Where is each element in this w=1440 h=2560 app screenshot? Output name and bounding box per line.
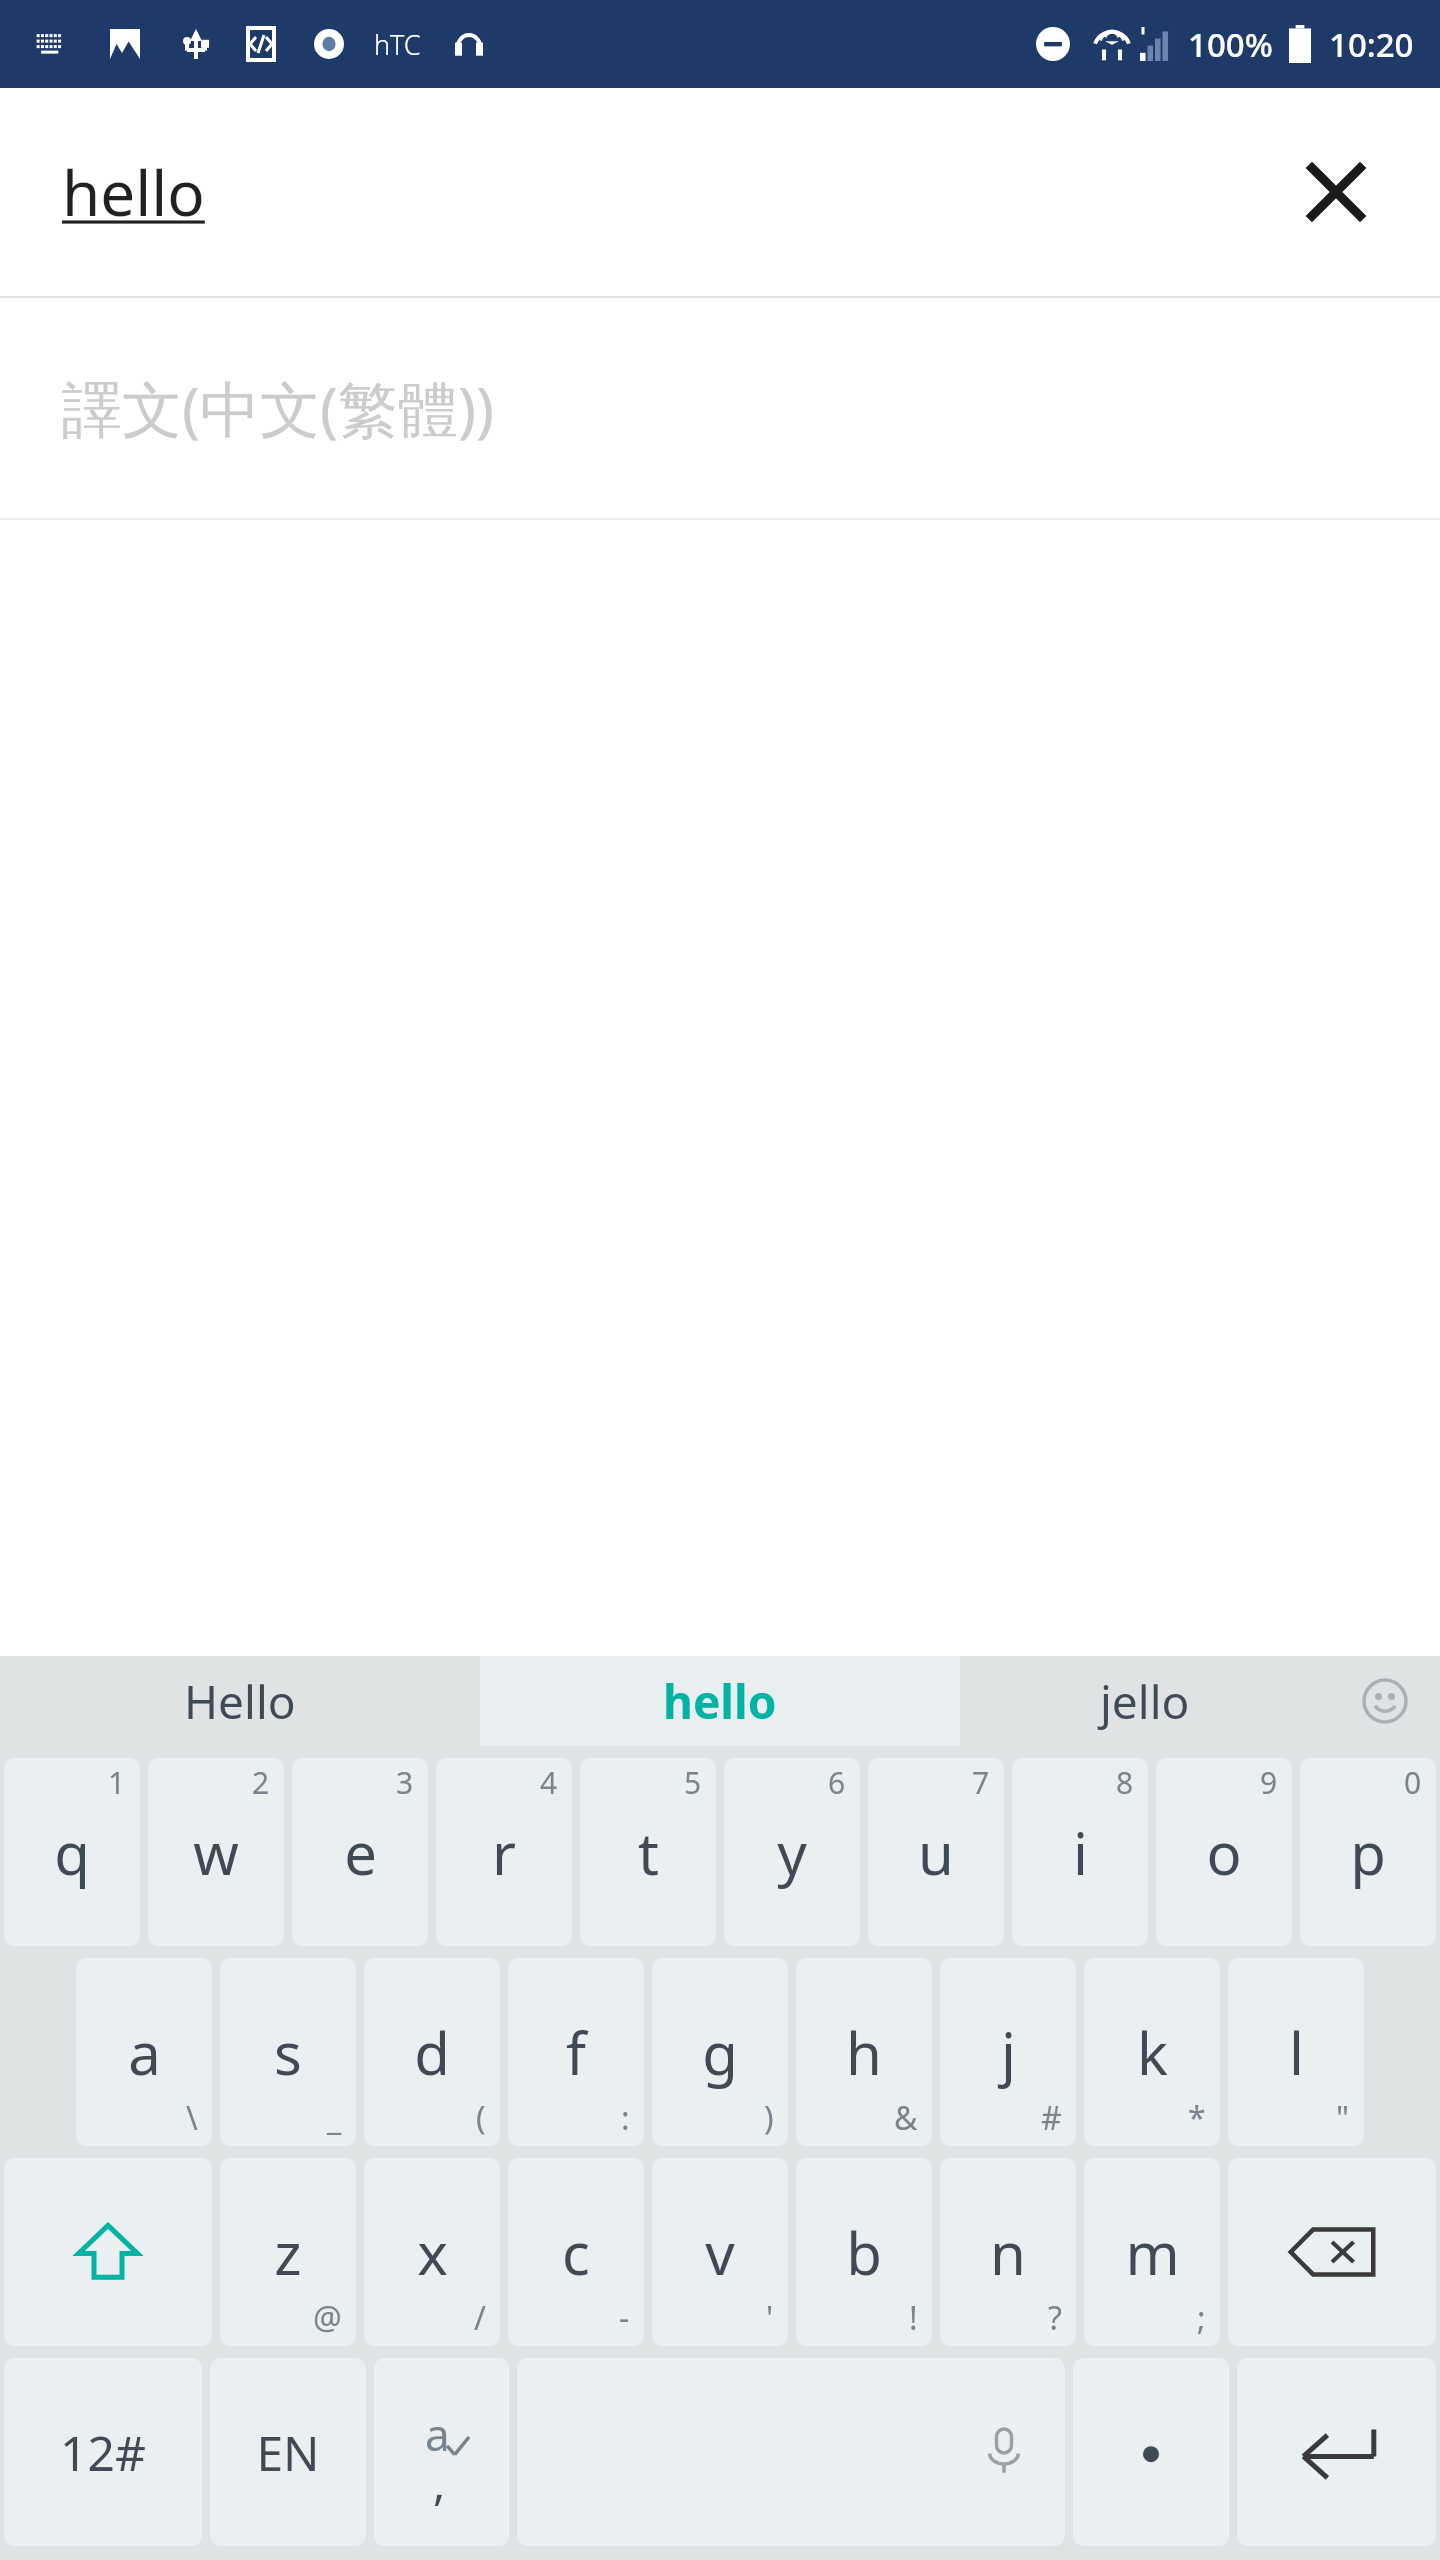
staticText: (: [476, 2096, 486, 2140]
staticText: t: [638, 1813, 659, 1892]
button[interactable]: jello: [960, 1656, 1330, 1746]
staticText: e: [344, 1813, 377, 1892]
staticText: ,: [433, 2451, 446, 2514]
staticText: i: [1073, 1813, 1088, 1892]
staticText: w: [193, 1813, 239, 1892]
staticText: v: [705, 2213, 735, 2292]
staticText: 8: [1116, 1762, 1134, 1803]
button[interactable]: k: [1084, 1958, 1220, 2146]
staticText: a: [425, 2404, 450, 2464]
staticText: hello: [663, 1670, 777, 1733]
staticText: hello: [62, 150, 205, 234]
button[interactable]: t: [580, 1758, 716, 1946]
staticText: g: [702, 2013, 738, 2092]
staticText: &: [894, 2096, 918, 2140]
button[interactable]: Backspace: [1228, 2158, 1436, 2346]
button[interactable]: f: [508, 1958, 644, 2146]
button[interactable]: hello: [480, 1656, 960, 1746]
button[interactable]: s: [220, 1958, 356, 2146]
button[interactable]: c: [508, 2158, 644, 2346]
staticText: Hello: [184, 1670, 296, 1733]
staticText: #: [1041, 2096, 1062, 2140]
staticText: 0: [1404, 1762, 1422, 1803]
staticText: 3: [396, 1762, 414, 1803]
staticText: x: [417, 2213, 448, 2292]
button[interactable]: g: [652, 1958, 788, 2146]
button[interactable]: m: [1084, 2158, 1220, 2346]
button[interactable]: z: [220, 2158, 356, 2346]
staticText: 5: [684, 1762, 702, 1803]
button[interactable]: Space: [517, 2358, 1065, 2546]
staticText: !: [909, 2296, 918, 2340]
staticText: k: [1137, 2013, 1168, 2092]
button[interactable]: 12#: [4, 2358, 202, 2546]
staticText: a: [128, 2013, 161, 2092]
button[interactable]: h: [796, 1958, 932, 2146]
button[interactable]: o: [1156, 1758, 1292, 1946]
button[interactable]: l: [1228, 1958, 1364, 2146]
staticText: /: [474, 2296, 486, 2340]
staticText: ): [764, 2096, 774, 2140]
button[interactable]: Clear: [1296, 152, 1376, 232]
staticText: 7: [972, 1762, 990, 1803]
staticText: o: [1206, 1813, 1242, 1892]
staticText: c: [562, 2213, 590, 2292]
button[interactable]: e: [292, 1758, 428, 1946]
button[interactable]: v: [652, 2158, 788, 2346]
button[interactable]: i: [1012, 1758, 1148, 1946]
staticText: b: [846, 2213, 882, 2292]
staticText: j: [1001, 2013, 1016, 2092]
staticText: ;: [1197, 2296, 1206, 2340]
button[interactable]: j: [940, 1958, 1076, 2146]
staticText: 100%: [1188, 22, 1273, 67]
staticText: s: [274, 2013, 302, 2092]
staticText: ?: [1048, 2296, 1062, 2340]
staticText: 4: [540, 1762, 558, 1803]
staticText: -: [619, 2296, 630, 2340]
staticText: q: [54, 1813, 90, 1892]
staticText: hTC: [374, 26, 421, 63]
staticText: jello: [1100, 1670, 1190, 1733]
button[interactable]: Period: [1073, 2358, 1229, 2546]
button[interactable]: x: [364, 2158, 500, 2346]
staticText: n: [990, 2213, 1026, 2292]
staticText: 9: [1260, 1762, 1278, 1803]
staticText: p: [1350, 1813, 1386, 1892]
staticText: 1: [108, 1762, 126, 1803]
staticText: y: [777, 1813, 807, 1892]
staticText: :: [621, 2096, 630, 2140]
button[interactable]: 譯文(中文(繁體)): [0, 298, 1440, 518]
button[interactable]: w: [148, 1758, 284, 1946]
button[interactable]: Hello: [0, 1656, 480, 1746]
staticText: ": [1336, 2096, 1350, 2140]
staticText: 譯文(中文(繁體)): [62, 367, 494, 449]
button[interactable]: Shift: [4, 2158, 212, 2346]
staticText: z: [274, 2213, 302, 2292]
staticText: \: [186, 2096, 198, 2140]
button[interactable]: a: [76, 1958, 212, 2146]
staticText: u: [918, 1813, 954, 1892]
staticText: @: [313, 2296, 342, 2340]
button[interactable]: Autocorrect: [374, 2358, 509, 2546]
staticText: *: [1188, 2096, 1206, 2140]
button[interactable]: n: [940, 2158, 1076, 2346]
button[interactable]: b: [796, 2158, 932, 2346]
button[interactable]: Emoji: [1330, 1656, 1440, 1746]
button[interactable]: q: [4, 1758, 140, 1946]
button[interactable]: Enter: [1237, 2358, 1436, 2546]
button[interactable]: r: [436, 1758, 572, 1946]
staticText: f: [566, 2013, 586, 2092]
button[interactable]: EN: [210, 2358, 366, 2546]
staticText: EN: [256, 2420, 320, 2485]
button[interactable]: p: [1300, 1758, 1436, 1946]
button[interactable]: y: [724, 1758, 860, 1946]
staticText: 2: [252, 1762, 270, 1803]
staticText: d: [414, 2013, 450, 2092]
button[interactable]: d: [364, 1958, 500, 2146]
staticText: ': [766, 2296, 774, 2340]
staticText: 6: [828, 1762, 846, 1803]
button[interactable]: u: [868, 1758, 1004, 1946]
staticText: 10:20: [1329, 22, 1414, 67]
button[interactable]: hello: [0, 88, 1440, 296]
staticText: m: [1125, 2213, 1180, 2292]
